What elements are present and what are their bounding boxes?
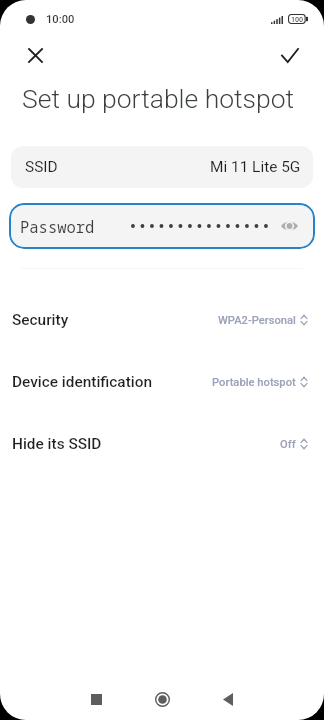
button[interactable]: Hide its SSID [0, 413, 324, 475]
button[interactable]: Password [9, 203, 315, 249]
staticText: Device identification [12, 373, 152, 391]
staticText: Security [12, 311, 69, 329]
staticText: Mi 11 Lite 5G [210, 158, 301, 176]
staticText: 100 [291, 15, 304, 23]
staticText: Off [280, 438, 296, 451]
staticText: SSID [25, 158, 58, 176]
staticText: WPA2-Personal [218, 314, 296, 327]
button[interactable]: Back [195, 679, 261, 720]
staticText: Set up portable hotspot [22, 83, 295, 114]
staticText: Hide its SSID [12, 435, 102, 453]
staticText: 10:00 [46, 13, 75, 26]
staticText: Portable hotspot [212, 376, 296, 389]
button[interactable]: Device identification [0, 351, 324, 413]
button[interactable]: Home [129, 679, 195, 720]
button[interactable]: Recents [63, 679, 129, 720]
button[interactable]: Done [267, 34, 311, 78]
button[interactable]: SSID [11, 146, 313, 188]
staticText: Password [20, 216, 95, 237]
button[interactable]: Show password [277, 214, 301, 238]
button[interactable]: Close [13, 34, 57, 78]
button[interactable]: Security [0, 289, 324, 351]
